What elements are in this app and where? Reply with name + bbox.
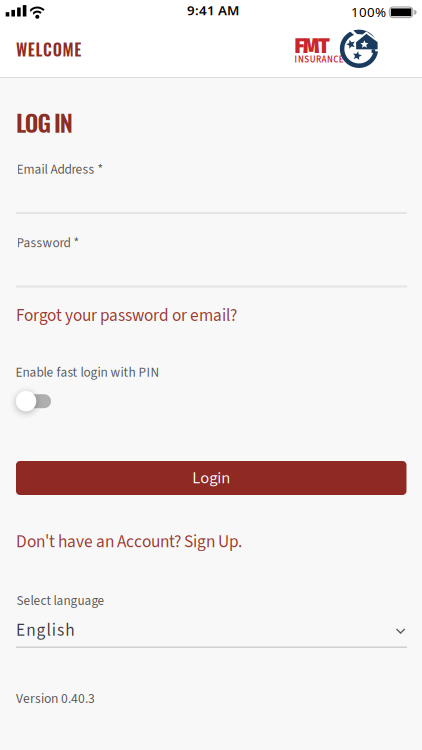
staticText: W xyxy=(16,37,27,61)
staticText: Login xyxy=(192,466,230,490)
staticText: E xyxy=(28,37,35,61)
staticText: 9:41 AM xyxy=(187,1,239,19)
staticText: Enable fast login with PIN xyxy=(15,363,159,382)
staticText: E xyxy=(74,37,81,61)
button[interactable]: Email Address * xyxy=(16,160,407,214)
staticText: 100% xyxy=(351,3,386,21)
staticText: s xyxy=(57,618,64,643)
staticText: E xyxy=(16,618,25,643)
staticText: FMT xyxy=(294,34,329,59)
staticText: Don't have an Account? Sign Up. xyxy=(16,530,242,554)
staticText: g xyxy=(36,618,45,643)
button[interactable]: Password * xyxy=(16,233,407,287)
staticText: L xyxy=(35,37,42,61)
button[interactable]: Don't have an Account? Sign Up. xyxy=(16,530,242,554)
staticText: Version 0.40.3 xyxy=(16,689,95,708)
button[interactable]: E xyxy=(16,617,407,647)
staticText: INSURANCE xyxy=(294,53,344,66)
staticText: n xyxy=(26,618,35,643)
staticText: IN xyxy=(54,104,73,140)
staticText: C xyxy=(43,37,52,61)
staticText: Password * xyxy=(16,233,79,252)
staticText: l xyxy=(47,618,51,643)
staticText: M xyxy=(62,37,73,61)
staticText: Forgot your password or email? xyxy=(16,303,237,328)
button[interactable]: Login xyxy=(16,461,406,495)
button[interactable]: Enable fast login with PIN xyxy=(14,389,54,413)
staticText: O xyxy=(53,37,62,61)
staticText: Select language xyxy=(16,591,104,610)
button[interactable]: Forgot your password or email? xyxy=(16,303,237,328)
staticText: LOG xyxy=(16,104,51,140)
staticText: h xyxy=(65,618,74,643)
staticText: i xyxy=(52,618,56,643)
staticText: Email Address * xyxy=(16,160,103,179)
